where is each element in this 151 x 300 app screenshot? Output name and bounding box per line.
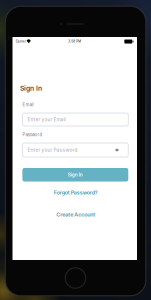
button[interactable]: Forgot Password? (46, 188, 106, 197)
button[interactable]: Sign In (22, 168, 128, 181)
staticText: 3:58 PM (68, 40, 81, 43)
staticText: Sign In (20, 84, 42, 92)
staticText: Forgot Password? (54, 189, 98, 196)
staticText: Carrier (16, 40, 26, 43)
staticText: Enter your Email (27, 117, 65, 122)
staticText: Password (22, 132, 42, 137)
staticText: Email (22, 102, 33, 107)
staticText: Sign In (68, 172, 83, 178)
staticText: Enter your Password (27, 147, 77, 153)
staticText: Create Account (56, 211, 95, 218)
button[interactable]: Create Account (46, 210, 106, 219)
